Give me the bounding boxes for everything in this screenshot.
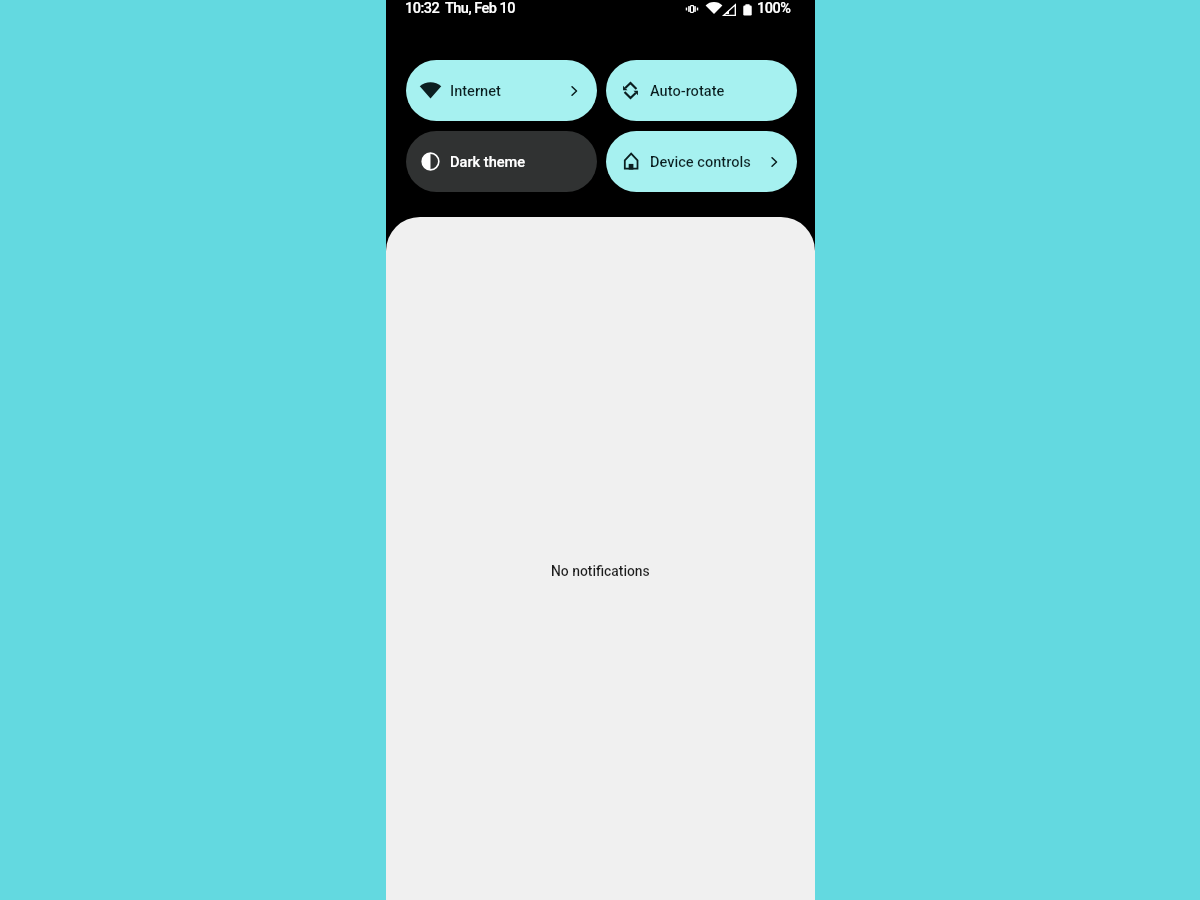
other: Battery full (743, 4, 752, 16)
button[interactable]: Device controls (606, 131, 797, 192)
button[interactable]: Internet (406, 60, 597, 121)
button[interactable]: Auto-rotate (606, 60, 797, 121)
staticText: 10:32 Thu, Feb 10 (405, 0, 515, 17)
staticText: No notifications (551, 563, 650, 579)
button[interactable]: Dark theme (406, 131, 597, 192)
staticText: 100% (757, 0, 791, 17)
other: Wi-Fi signal full (707, 3, 721, 14)
staticText: Internet (450, 82, 501, 99)
staticText: Device controls (650, 153, 751, 170)
other: Mobile signal (723, 4, 736, 16)
staticText: Dark theme (450, 153, 526, 170)
other: Ringer set to vibrate (685, 5, 699, 13)
staticText: Auto-rotate (650, 82, 725, 99)
